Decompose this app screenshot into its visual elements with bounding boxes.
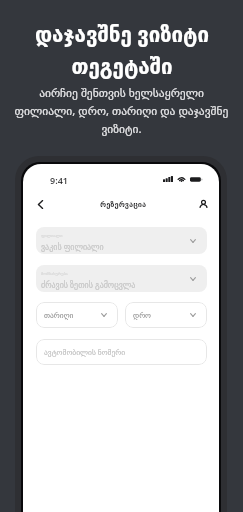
button[interactable]: ავტომობილის ნომერი <box>36 339 207 365</box>
staticText: თარიღი <box>44 311 74 320</box>
button[interactable]: Back <box>28 192 52 216</box>
staticText: მომსახურება <box>41 271 68 276</box>
staticText: დაჯავშნე ვიზიტი თეგეტაში <box>35 20 209 79</box>
staticText: ფილიალი <box>41 233 63 238</box>
staticText: აირჩიე შენთვის ხელსაყრელი ფილიალი, დრო, … <box>8 85 235 137</box>
button[interactable]: ფილიალი <box>36 227 207 254</box>
button[interactable]: მომსახურება <box>36 265 207 292</box>
staticText: ვაკის ფილიალი <box>41 241 104 252</box>
button[interactable]: თარიღი <box>36 302 118 328</box>
staticText: ძრავის ზეთის გამოცვლა <box>41 279 136 290</box>
button[interactable]: დრო <box>125 302 207 328</box>
staticText: რეზერვაცია <box>100 200 147 209</box>
staticText: ავტომობილის ნომერი <box>44 347 126 357</box>
staticText: დრო <box>133 311 151 320</box>
button[interactable]: რეზერვაცია <box>100 200 147 209</box>
staticText: 9:41 <box>50 174 68 186</box>
button[interactable]: Profile <box>191 192 215 216</box>
